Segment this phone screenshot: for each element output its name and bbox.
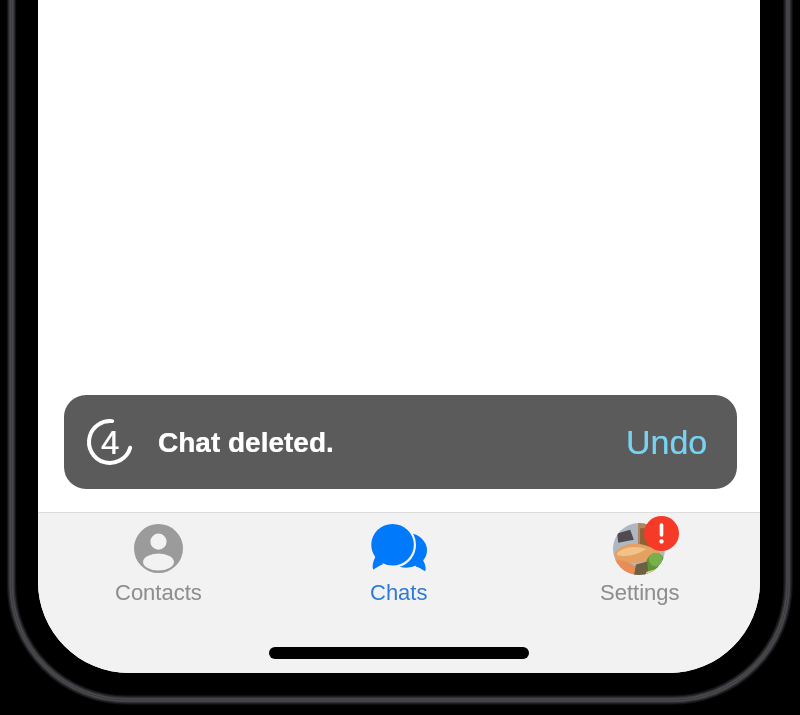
other: Contacts [134, 524, 183, 573]
button[interactable]: Undo [626, 423, 708, 461]
staticText: Undo [626, 423, 708, 461]
other: Chats [371, 524, 427, 576]
staticText: Settings [600, 580, 680, 605]
button[interactable]: Contacts [38, 522, 278, 622]
button[interactable]: Chats [278, 522, 519, 622]
other: Settings [613, 522, 679, 574]
staticText: Chats [370, 580, 428, 605]
button[interactable]: Settings [519, 522, 760, 622]
staticText: Contacts [115, 580, 202, 605]
staticText: 4 [101, 424, 120, 461]
button[interactable]: 4 [64, 395, 737, 489]
staticText: Chat deleted. [158, 427, 334, 458]
